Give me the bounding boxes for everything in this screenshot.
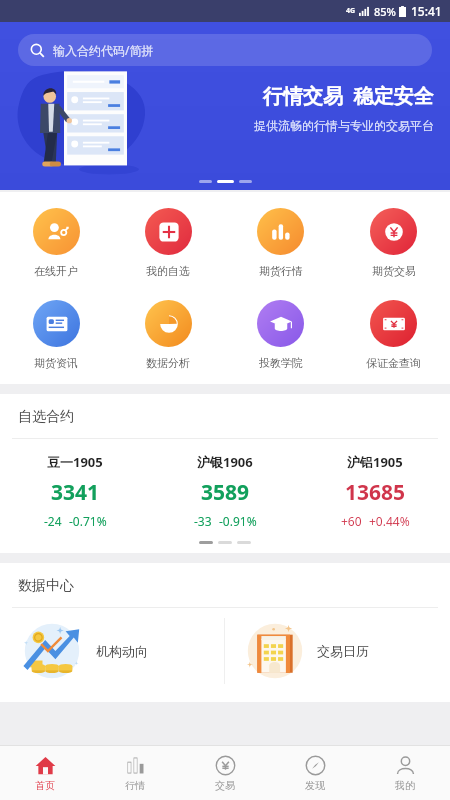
button[interactable]: 我的 [360,746,450,800]
button[interactable]: 豆一1905 [0,453,150,529]
staticText: 发现 [305,779,325,792]
staticText: -0.91% [219,513,257,529]
staticText: 3341 [51,478,100,507]
staticText: 期货行情 [259,264,303,278]
staticText: 提供流畅的行情与专业的交易平台 [254,118,434,133]
button[interactable]: 交易日历 [225,608,450,694]
staticText: 首页 [35,779,55,792]
staticText: 85% [374,4,396,19]
button[interactable]: 数据分析 [112,296,224,374]
button[interactable]: 输入合约代码/简拼 [18,34,432,66]
staticText: +0.44% [369,513,410,529]
staticText: 15:41 [411,3,442,19]
staticText: -33 [194,513,212,529]
staticText: 期货交易 [372,264,416,278]
staticText: 豆一1905 [47,453,103,471]
staticText: 我的 [395,779,415,792]
button[interactable]: 首页 [0,746,90,800]
button[interactable]: 沪银1906 [150,453,300,529]
staticText: -24 [44,513,62,529]
staticText: 期货资讯 [34,356,78,370]
staticText: 我的自选 [146,264,190,278]
button[interactable]: 期货行情 [224,204,337,282]
button[interactable]: 行情 [90,746,180,800]
button[interactable]: 我的自选 [112,204,224,282]
staticText: 投教学院 [259,356,303,370]
button[interactable]: 期货交易 [337,204,450,282]
button[interactable]: 机构动向 [0,608,224,694]
staticText: 数据分析 [146,356,190,370]
staticText: 交易 [215,779,235,792]
button[interactable]: 发现 [270,746,360,800]
staticText: 自选合约 [18,408,74,426]
staticText: 13685 [345,478,406,507]
staticText: -0.71% [69,513,107,529]
button[interactable]: 在线开户 [0,204,112,282]
staticText: +60 [341,513,362,529]
staticText: 行情交易 稳定安全 [263,82,434,109]
staticText: 3589 [201,478,250,507]
button[interactable]: 沪铝1905 [300,453,450,529]
staticText: 沪铝1905 [347,453,403,471]
button[interactable]: 期货资讯 [0,296,112,374]
button[interactable]: 交易 [180,746,270,800]
staticText: 保证金查询 [366,356,421,370]
staticText: 沪银1906 [197,453,253,471]
staticText: 交易日历 [317,643,369,659]
staticText: 机构动向 [96,643,148,659]
staticText: 4G [346,6,356,16]
staticText: 输入合约代码/简拼 [53,42,154,58]
staticText: 行情 [125,779,145,792]
button[interactable]: 保证金查询 [337,296,450,374]
button[interactable]: 投教学院 [224,296,337,374]
staticText: 在线开户 [34,264,78,278]
staticText: 数据中心 [18,577,74,595]
